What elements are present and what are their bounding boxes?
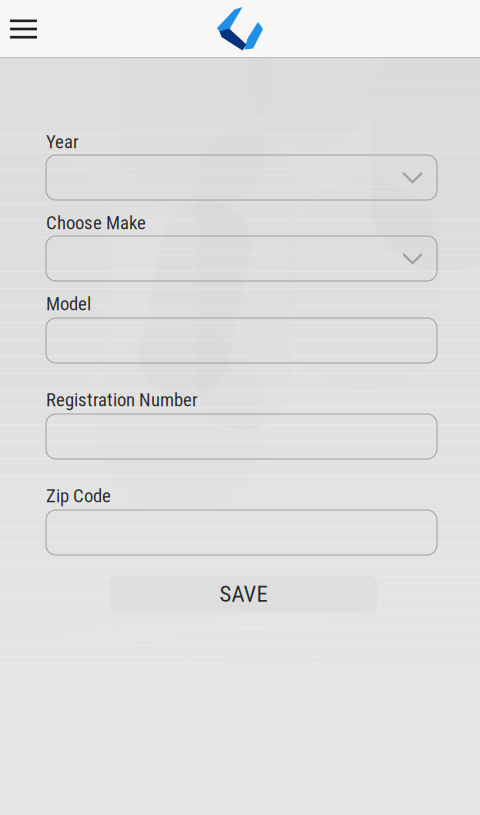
staticText: Registration Number: [46, 389, 198, 411]
button[interactable]: SAVE: [110, 576, 377, 612]
staticText: Model: [46, 293, 91, 315]
staticText: SAVE: [219, 581, 267, 607]
button[interactable]: Menu: [0, 0, 47, 58]
staticText: Choose Make: [46, 212, 146, 234]
staticText: Year: [46, 131, 79, 153]
staticText: Zip Code: [46, 485, 111, 507]
